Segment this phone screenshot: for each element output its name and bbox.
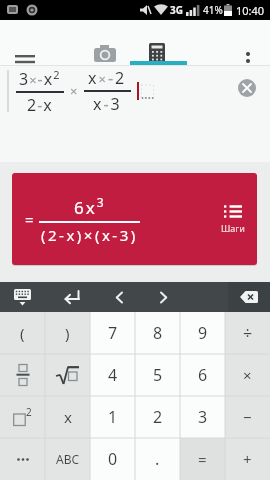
staticText: 3 [198, 406, 208, 428]
staticText: x×-2 [88, 67, 127, 89]
staticText: + [243, 449, 252, 469]
button[interactable] [147, 282, 179, 312]
staticText: 0 [108, 448, 118, 470]
button[interactable] [0, 354, 45, 396]
button[interactable] [238, 79, 256, 97]
button[interactable] [135, 40, 179, 66]
staticText: ) [65, 323, 70, 343]
staticText: x [64, 407, 72, 427]
staticText: ÷ [243, 322, 253, 344]
staticText: 6x3 [74, 194, 106, 219]
button[interactable] [83, 40, 127, 66]
staticText: 2-x [27, 94, 53, 115]
button[interactable]: 9 [180, 312, 225, 354]
button[interactable] [0, 438, 45, 480]
button[interactable]: 8 [135, 312, 180, 354]
staticText: 3×-x2 [19, 67, 61, 90]
staticText: 2 [153, 406, 163, 428]
staticText: 9 [198, 322, 208, 344]
button[interactable]: 7 [90, 312, 135, 354]
staticText: 2 [26, 405, 32, 419]
button[interactable]: ( [0, 312, 45, 354]
staticText: 6 [198, 364, 208, 386]
staticText: 10:40 [236, 3, 265, 18]
staticText: . [155, 448, 160, 470]
staticText: = [198, 449, 207, 469]
button[interactable]: 2 [135, 396, 180, 438]
button[interactable]: 0 [90, 438, 135, 480]
staticText: (2-x)×(x-3) [41, 225, 138, 245]
staticText: 8 [153, 322, 163, 344]
staticText: Шаги [221, 222, 245, 234]
staticText: x-3 [93, 93, 122, 115]
button[interactable]: = [180, 438, 225, 480]
button[interactable]: − [225, 396, 270, 438]
staticText: = [25, 209, 34, 229]
button[interactable]: + [225, 438, 270, 480]
staticText: 7 [108, 322, 118, 344]
staticText: 4 [108, 364, 118, 386]
staticText: 1 [108, 406, 118, 428]
staticText: 3G [170, 3, 183, 17]
button[interactable]: . [135, 438, 180, 480]
button[interactable] [6, 282, 38, 312]
button[interactable]: ÷ [225, 312, 270, 354]
staticText: − [243, 407, 252, 427]
button[interactable] [240, 52, 256, 72]
button[interactable]: 6 [180, 354, 225, 396]
button[interactable] [45, 354, 90, 396]
staticText: ABC [56, 451, 80, 467]
button[interactable]: × [225, 354, 270, 396]
button[interactable]: 1 [90, 396, 135, 438]
staticText: × [70, 82, 78, 100]
button[interactable]: = [12, 173, 257, 265]
staticText: ( [20, 323, 25, 343]
button[interactable]: ABC [45, 438, 90, 480]
button[interactable]: Шаги [221, 205, 245, 234]
staticText: 5 [153, 364, 163, 386]
staticText: 41% [203, 3, 223, 17]
button[interactable]: 4 [90, 354, 135, 396]
staticText: × [243, 365, 252, 385]
button[interactable]: 2 [0, 396, 45, 438]
button[interactable] [56, 282, 88, 312]
button[interactable] [228, 282, 270, 312]
button[interactable]: 3 [180, 396, 225, 438]
button[interactable]: ) [45, 312, 90, 354]
button[interactable]: 5 [135, 354, 180, 396]
button[interactable]: x [45, 396, 90, 438]
button[interactable] [15, 55, 35, 69]
button[interactable] [103, 282, 135, 312]
